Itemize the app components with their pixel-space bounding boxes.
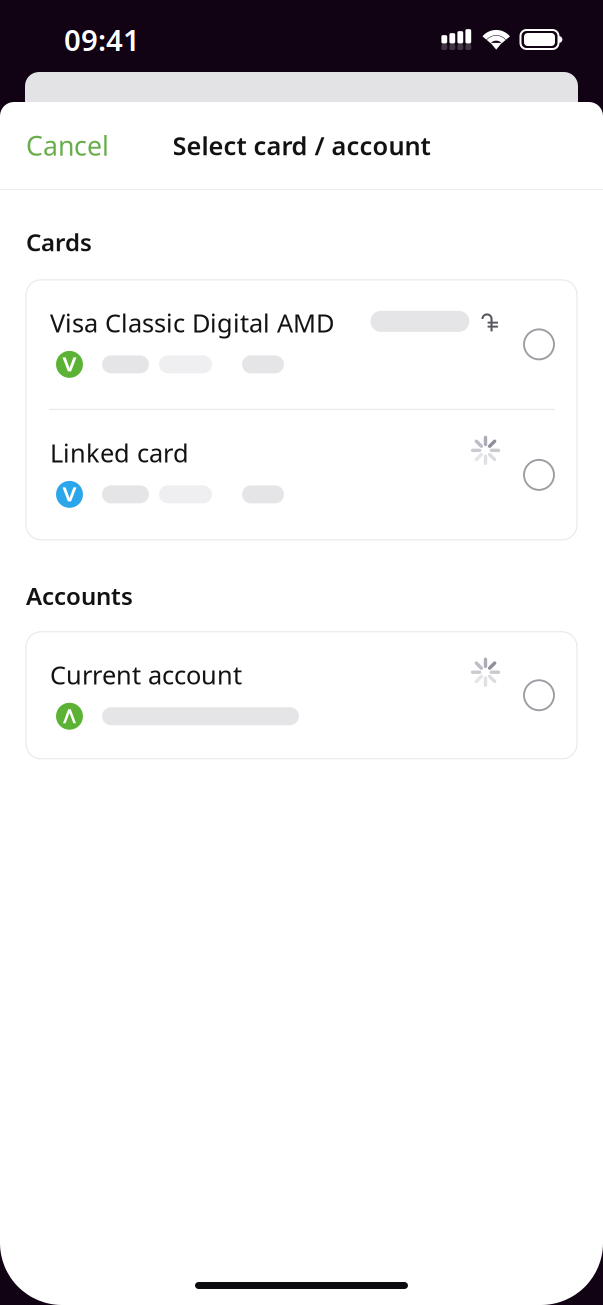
button[interactable]: Cancel [0, 114, 127, 177]
staticText: Cancel [26, 128, 109, 163]
staticText: 09:41 [64, 20, 140, 59]
staticText: Select card / account [172, 129, 430, 162]
staticText: Visa Classic Digital AMD [50, 306, 334, 339]
staticText: Accounts [26, 580, 133, 612]
staticText: Cards [26, 226, 92, 258]
button[interactable]: Visa Classic Digital AMD [26, 280, 577, 409]
staticText: Current account [50, 658, 242, 691]
button[interactable]: Linked card [26, 410, 577, 540]
staticText: Linked card [50, 436, 189, 469]
button[interactable]: Current account [26, 632, 577, 759]
